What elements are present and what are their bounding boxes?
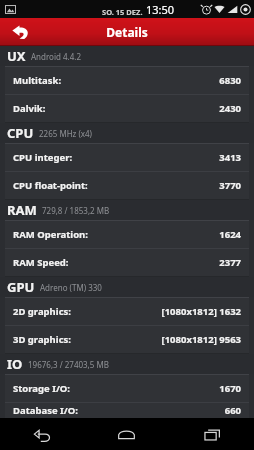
button[interactable]: Multitask: bbox=[5, 67, 249, 94]
staticText: CPU integer: bbox=[13, 151, 73, 164]
staticText: GPU bbox=[7, 278, 35, 296]
button[interactable]: CPU float-point: bbox=[5, 172, 249, 199]
button[interactable]: Home bbox=[84, 418, 169, 450]
staticText: Details bbox=[106, 24, 148, 40]
staticText: CPU float-point: bbox=[13, 179, 88, 192]
button[interactable]: Dalvik: bbox=[5, 95, 249, 122]
staticText: 2265 MHz (x4) bbox=[39, 128, 93, 139]
button[interactable]: Back bbox=[0, 418, 84, 450]
button[interactable]: Recent apps bbox=[169, 418, 254, 450]
button[interactable]: Database I/O: bbox=[5, 403, 249, 418]
staticText: Adreno (TM) 330 bbox=[40, 282, 102, 293]
staticText: RAM Operation: bbox=[13, 228, 88, 241]
staticText: IO bbox=[7, 355, 23, 373]
staticText: 19676,3 / 27403,5 MB bbox=[28, 359, 109, 370]
staticText: SO. 15 DEZ. bbox=[102, 7, 143, 17]
staticText: Multitask: bbox=[13, 74, 62, 87]
staticText: [1080x1812] 9563 bbox=[161, 333, 241, 346]
staticText: CPU bbox=[7, 124, 34, 142]
staticText: 2430 bbox=[219, 102, 241, 115]
button[interactable]: 2D graphics: bbox=[5, 298, 249, 325]
staticText: 660 bbox=[224, 404, 241, 417]
staticText: 2D graphics: bbox=[13, 305, 71, 318]
staticText: Dalvik: bbox=[13, 102, 46, 115]
staticText: Android 4.4.2 bbox=[31, 51, 82, 62]
staticText: 13:50 bbox=[146, 2, 175, 17]
staticText: [1080x1812] 1632 bbox=[161, 305, 241, 318]
button[interactable]: CPU integer: bbox=[5, 144, 249, 171]
staticText: 2377 bbox=[219, 256, 241, 269]
button[interactable]: Back bbox=[0, 18, 40, 46]
staticText: 729,8 / 1853,2 MB bbox=[42, 205, 110, 216]
staticText: 3413 bbox=[219, 151, 241, 164]
staticText: 3770 bbox=[219, 179, 241, 192]
staticText: UX bbox=[7, 47, 26, 65]
staticText: RAM bbox=[7, 201, 37, 219]
staticText: Storage I/O: bbox=[13, 382, 71, 395]
staticText: 3D graphics: bbox=[13, 333, 71, 346]
staticText: 6830 bbox=[219, 74, 241, 87]
staticText: RAM Speed: bbox=[13, 256, 69, 269]
staticText: 1670 bbox=[219, 382, 241, 395]
staticText: Database I/O: bbox=[13, 404, 78, 417]
staticText: 1624 bbox=[219, 228, 241, 241]
button[interactable]: RAM Speed: bbox=[5, 249, 249, 276]
button[interactable]: Storage I/O: bbox=[5, 375, 249, 402]
button[interactable]: 3D graphics: bbox=[5, 326, 249, 353]
button[interactable]: RAM Operation: bbox=[5, 221, 249, 248]
